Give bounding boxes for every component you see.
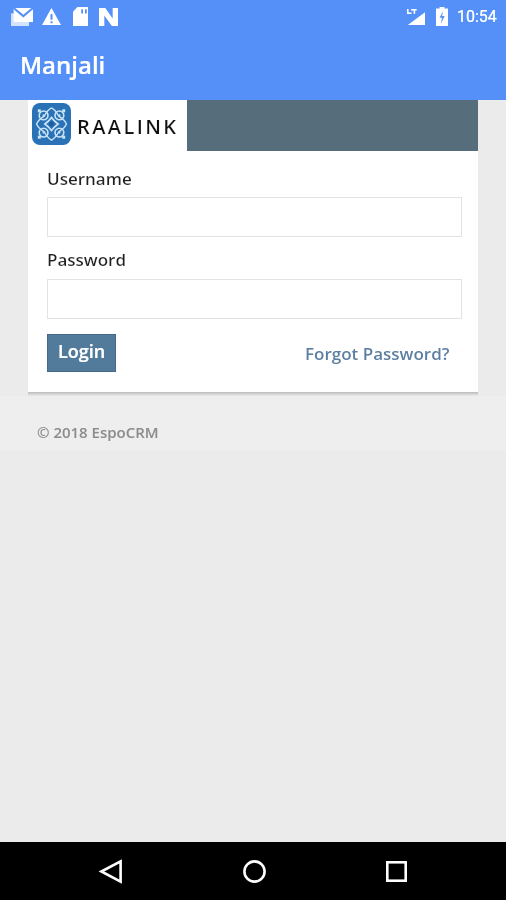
button[interactable] — [47, 279, 462, 319]
button[interactable]: Login — [47, 334, 116, 372]
staticText: Username — [47, 167, 132, 190]
staticText: Password — [47, 248, 127, 271]
staticText: 10:54 — [457, 7, 497, 26]
staticText: RAALINK — [77, 113, 179, 140]
staticText: Manjali — [20, 48, 106, 81]
button[interactable] — [47, 197, 462, 237]
button[interactable]: Forgot Password? — [305, 342, 462, 365]
button[interactable]: Home — [230, 847, 278, 895]
button[interactable]: Recent apps — [372, 847, 420, 895]
staticText: © 2018 EspoCRM — [37, 422, 159, 442]
button[interactable]: Back — [87, 847, 135, 895]
staticText: Login — [58, 339, 106, 364]
staticText: Forgot Password? — [305, 342, 450, 365]
